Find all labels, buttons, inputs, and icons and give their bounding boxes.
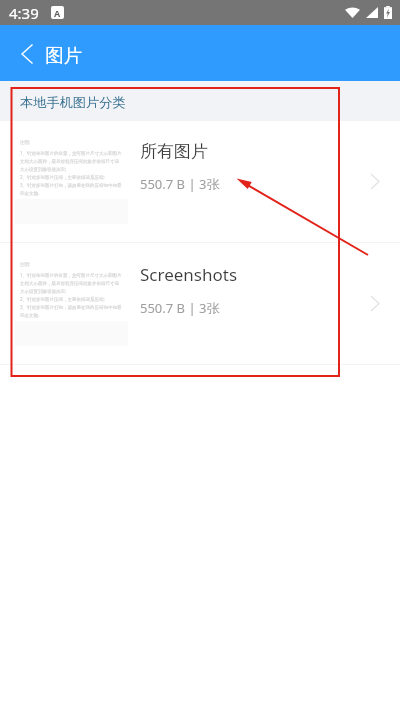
staticText: 550.7 B | 3张 bbox=[140, 299, 220, 317]
staticText: 1、针对单张图片的批量，您可图片尺寸大小和图片 文档大小两种，最后对程序压缩对象… bbox=[20, 150, 122, 196]
button[interactable]: 注明: bbox=[0, 243, 400, 364]
staticText: 本地手机图片分类 bbox=[20, 94, 126, 111]
staticText: Screenshots bbox=[140, 263, 238, 286]
staticText: 所有图片 bbox=[140, 141, 208, 162]
staticText: A bbox=[54, 7, 61, 19]
button[interactable]: 注明: bbox=[0, 121, 400, 242]
staticText: 注明: bbox=[20, 261, 31, 267]
staticText: 4:39 bbox=[9, 3, 39, 23]
staticText: 550.7 B | 3张 bbox=[140, 175, 220, 193]
staticText: 图片 bbox=[45, 44, 82, 67]
staticText: 1、针对单张图片的批量，您可图片尺寸大小和图片 文档大小两种，最后对程序压缩对象… bbox=[20, 272, 122, 318]
button[interactable]: Back bbox=[0, 27, 52, 79]
staticText: 注明: bbox=[20, 139, 31, 145]
